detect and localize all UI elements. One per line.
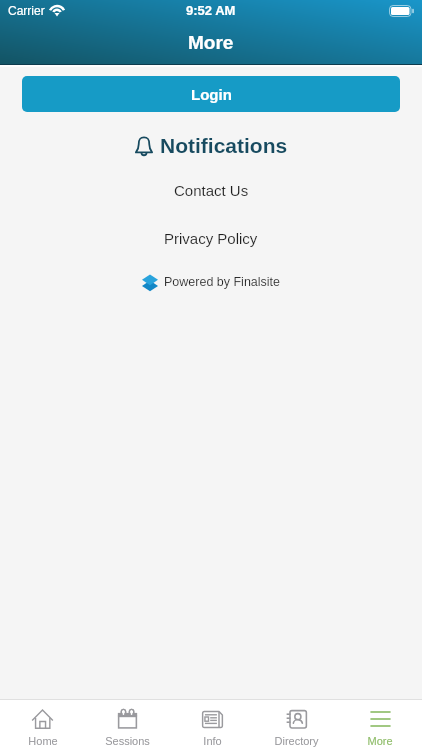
staticText: Info — [203, 735, 222, 747]
button[interactable]: Powered by Finalsite — [0, 266, 422, 298]
staticText: Powered by Finalsite — [164, 275, 281, 289]
staticText: Carrier — [8, 4, 45, 17]
button[interactable]: Contact Us — [0, 173, 422, 207]
staticText: More — [188, 32, 234, 53]
staticText: Login — [191, 86, 232, 103]
staticText: Sessions — [105, 735, 150, 747]
staticText: Contact Us — [174, 182, 249, 199]
staticText: Notifications — [160, 134, 288, 157]
button[interactable]: Privacy Policy — [0, 221, 422, 255]
staticText: More — [367, 735, 393, 747]
button[interactable]: More — [338, 700, 422, 750]
staticText: Directory — [274, 735, 319, 747]
button[interactable]: Info — [170, 700, 254, 750]
staticText: 9:52 AM — [186, 3, 236, 18]
staticText: Home — [28, 735, 58, 747]
button[interactable]: Notifications — [0, 124, 422, 167]
button[interactable]: Login — [22, 76, 400, 112]
staticText: Privacy Policy — [164, 230, 258, 247]
button[interactable]: Home — [0, 700, 85, 750]
button[interactable]: Sessions — [85, 700, 170, 750]
button[interactable]: Directory — [254, 700, 338, 750]
